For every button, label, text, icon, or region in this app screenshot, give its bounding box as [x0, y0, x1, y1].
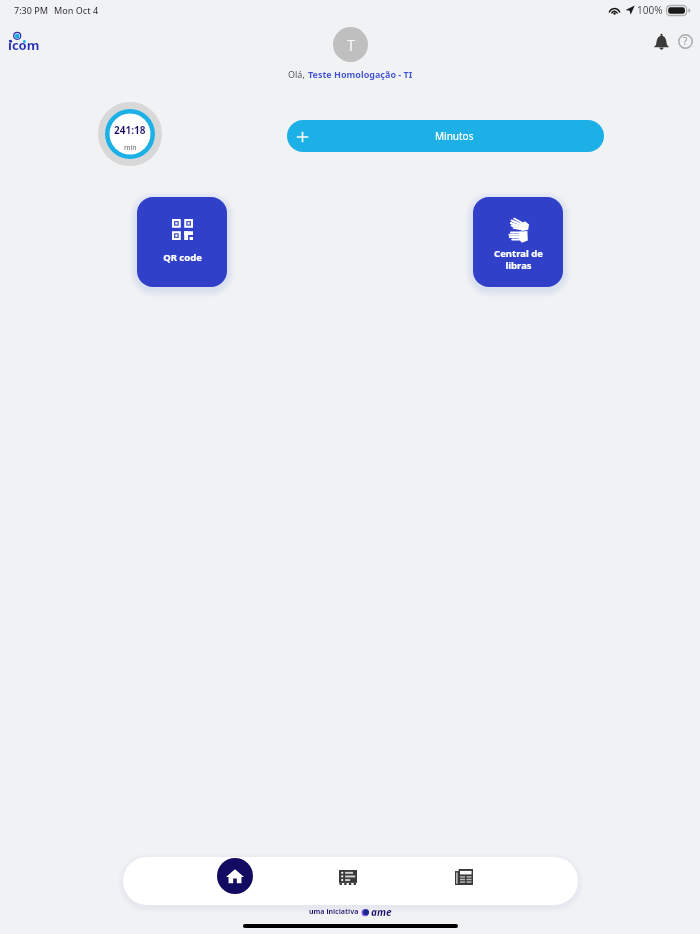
- button[interactable]: Central de libras: [473, 197, 563, 287]
- staticText: QR code: [163, 251, 202, 264]
- button[interactable]: News: [448, 861, 480, 893]
- button[interactable]: 241:18 minutes remaining: [98, 102, 162, 166]
- button[interactable]: Activities list: [332, 861, 364, 893]
- staticText: Olá,: [288, 68, 308, 80]
- button[interactable]: uma iniciativa: [309, 905, 392, 919]
- staticText: icom: [8, 36, 40, 54]
- button[interactable]: Minutos: [287, 120, 604, 152]
- staticText: Mon Oct 4: [54, 4, 99, 16]
- button[interactable]: Notifications: [651, 32, 671, 50]
- staticText: min: [124, 143, 137, 153]
- button[interactable]: Home: [217, 858, 253, 894]
- staticText: Central de libras: [494, 247, 543, 272]
- button[interactable]: QR code: [137, 197, 227, 287]
- staticText: Teste Homologação - TI: [308, 68, 413, 80]
- staticText: 241:18: [114, 123, 146, 137]
- staticText: 7:30 PM: [14, 4, 48, 16]
- staticText: 100%: [637, 3, 663, 17]
- button[interactable]: icom: [8, 30, 42, 52]
- staticText: ?: [683, 34, 688, 48]
- staticText: Minutos: [435, 129, 474, 143]
- button[interactable]: Profile: [333, 27, 368, 62]
- button[interactable]: Olá,: [288, 68, 413, 80]
- staticText: T: [347, 35, 355, 55]
- button[interactable]: Help: [676, 32, 694, 50]
- staticText: uma iniciativa: [309, 907, 361, 917]
- staticText: ame: [371, 905, 392, 919]
